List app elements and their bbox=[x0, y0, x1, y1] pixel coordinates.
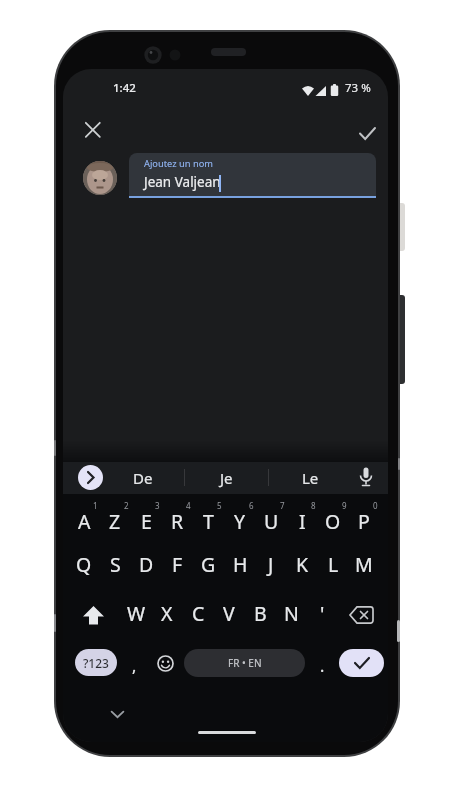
button[interactable]: , bbox=[124, 655, 144, 677]
staticText: T bbox=[203, 508, 214, 535]
staticText: C bbox=[192, 600, 205, 627]
staticText: 9 bbox=[342, 500, 347, 511]
button[interactable]: R bbox=[161, 508, 193, 535]
staticText: De bbox=[133, 468, 153, 488]
staticText: L bbox=[328, 551, 339, 578]
button[interactable]: Q bbox=[68, 551, 100, 578]
button[interactable]: J bbox=[255, 551, 287, 578]
staticText: Ajoutez un nom bbox=[144, 157, 213, 170]
button[interactable]: Je bbox=[206, 466, 246, 490]
staticText: 0 bbox=[373, 500, 378, 511]
button[interactable]: Y bbox=[224, 508, 256, 535]
staticText: D bbox=[139, 551, 154, 578]
staticText: 4 bbox=[186, 500, 191, 511]
button[interactable] bbox=[339, 649, 384, 677]
staticText: F bbox=[172, 551, 183, 578]
staticText: ' bbox=[320, 600, 325, 627]
button[interactable]: FR • EN bbox=[184, 649, 305, 677]
button[interactable] bbox=[355, 463, 377, 491]
staticText: Y bbox=[234, 508, 246, 535]
button[interactable] bbox=[76, 599, 110, 631]
staticText: I bbox=[299, 508, 306, 535]
staticText: R bbox=[171, 508, 184, 535]
button[interactable]: O bbox=[317, 508, 349, 535]
button[interactable]: De bbox=[123, 466, 163, 490]
staticText: M bbox=[355, 551, 373, 578]
button[interactable] bbox=[107, 707, 127, 721]
staticText: N bbox=[284, 600, 299, 627]
button[interactable]: N bbox=[275, 600, 307, 627]
staticText: 73 % bbox=[345, 80, 371, 96]
staticText: 7 bbox=[280, 500, 285, 511]
button[interactable] bbox=[156, 654, 174, 672]
staticText: 6 bbox=[249, 500, 254, 511]
button[interactable] bbox=[83, 161, 117, 195]
staticText: H bbox=[233, 551, 248, 578]
button[interactable] bbox=[78, 465, 103, 490]
staticText: Je bbox=[220, 468, 233, 488]
staticText: S bbox=[110, 551, 121, 578]
button[interactable]: ?123 bbox=[75, 649, 117, 676]
staticText: X bbox=[161, 600, 173, 627]
button[interactable]: T bbox=[192, 508, 224, 535]
button[interactable]: P bbox=[348, 508, 380, 535]
button[interactable]: K bbox=[286, 551, 318, 578]
staticText: 1:42 bbox=[113, 80, 136, 96]
staticText: , bbox=[132, 655, 137, 677]
staticText: U bbox=[264, 508, 279, 535]
staticText: Z bbox=[109, 508, 121, 535]
staticText: J bbox=[268, 551, 274, 578]
button[interactable]: I bbox=[286, 508, 318, 535]
staticText: W bbox=[127, 600, 146, 627]
button[interactable]: L bbox=[317, 551, 349, 578]
staticText: FR • EN bbox=[228, 656, 262, 670]
staticText: E bbox=[141, 508, 152, 535]
button[interactable]: H bbox=[224, 551, 256, 578]
staticText: 8 bbox=[311, 500, 316, 511]
button[interactable]: M bbox=[348, 551, 380, 578]
staticText: A bbox=[78, 508, 91, 535]
button[interactable]: . bbox=[313, 655, 331, 677]
staticText: 1 bbox=[93, 500, 98, 511]
button[interactable]: Le bbox=[290, 466, 330, 490]
staticText: 3 bbox=[155, 500, 160, 511]
button[interactable] bbox=[353, 121, 381, 145]
button[interactable]: B bbox=[244, 600, 276, 627]
staticText: G bbox=[201, 551, 216, 578]
button[interactable]: S bbox=[99, 551, 131, 578]
staticText: Jean Valjean bbox=[144, 173, 221, 191]
button[interactable] bbox=[79, 116, 107, 144]
button[interactable]: F bbox=[161, 551, 193, 578]
staticText: Le bbox=[302, 468, 319, 488]
button[interactable]: Z bbox=[99, 508, 131, 535]
staticText: 5 bbox=[217, 500, 222, 511]
button[interactable]: Ajoutez un nom bbox=[129, 153, 376, 198]
staticText: ?123 bbox=[83, 655, 109, 671]
staticText: O bbox=[325, 508, 341, 535]
button[interactable]: E bbox=[130, 508, 162, 535]
staticText: . bbox=[320, 655, 325, 677]
button[interactable] bbox=[344, 599, 378, 631]
button[interactable]: U bbox=[255, 508, 287, 535]
staticText: B bbox=[254, 600, 267, 627]
staticText: V bbox=[223, 600, 235, 627]
staticText: K bbox=[296, 551, 309, 578]
button[interactable]: D bbox=[130, 551, 162, 578]
button[interactable]: ' bbox=[306, 600, 338, 627]
button[interactable]: X bbox=[151, 600, 183, 627]
button[interactable]: V bbox=[213, 600, 245, 627]
staticText: 2 bbox=[124, 500, 129, 511]
button[interactable]: G bbox=[192, 551, 224, 578]
staticText: P bbox=[358, 508, 370, 535]
button[interactable]: C bbox=[182, 600, 214, 627]
staticText: Q bbox=[76, 551, 92, 578]
button[interactable]: A bbox=[68, 508, 100, 535]
button[interactable]: W bbox=[120, 600, 152, 627]
